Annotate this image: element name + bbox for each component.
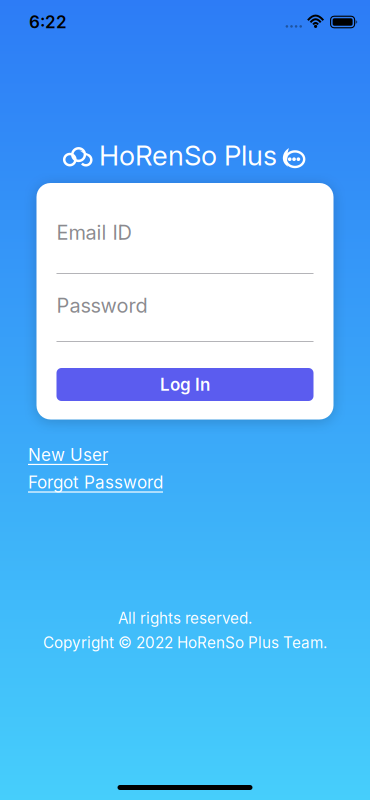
staticText: HoRenSo Plus bbox=[99, 139, 277, 172]
staticText: Password bbox=[56, 293, 147, 318]
staticText: Copyright © 2022 HoRenSo Plus Team. bbox=[43, 633, 327, 652]
staticText: Email ID bbox=[56, 220, 131, 245]
button[interactable]: Password bbox=[56, 292, 313, 342]
staticText: Forgot Password bbox=[28, 472, 163, 493]
button[interactable]: Email ID bbox=[56, 219, 313, 274]
button[interactable]: Log In bbox=[56, 368, 313, 401]
staticText: 6:22 bbox=[29, 12, 67, 32]
button[interactable]: New User bbox=[28, 444, 108, 465]
button[interactable]: Forgot Password bbox=[28, 472, 163, 493]
staticText: All rights reserved. bbox=[118, 609, 252, 627]
staticText: New User bbox=[28, 444, 108, 465]
staticText: Log In bbox=[160, 374, 210, 395]
